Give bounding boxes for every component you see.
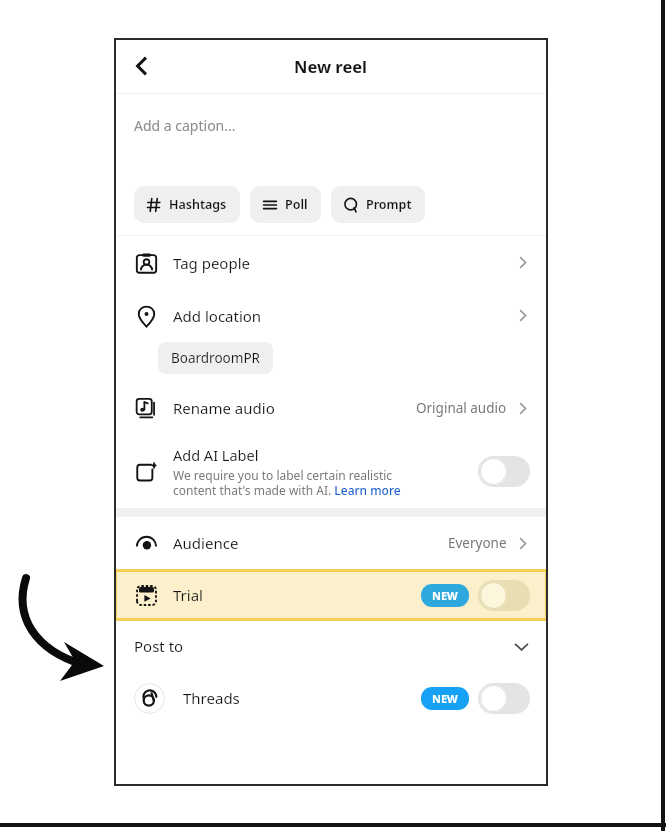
button[interactable]: Hashtags: [134, 186, 240, 223]
staticText: Post to: [134, 636, 184, 656]
button[interactable]: Threads: [114, 671, 548, 725]
button[interactable]: Prompt: [331, 186, 425, 223]
button[interactable]: Add AI Label: [114, 434, 548, 508]
staticText: Rename audio: [173, 398, 275, 418]
staticText: Poll: [285, 196, 308, 213]
staticText: Add location: [173, 306, 262, 326]
staticText: New reel: [294, 55, 368, 77]
staticText: Hashtags: [169, 196, 227, 213]
button[interactable]: Post to: [114, 621, 548, 671]
button[interactable]: Toggle: [478, 683, 530, 714]
staticText: BoardroomPR: [171, 349, 260, 367]
staticText: Trial: [173, 585, 203, 605]
button[interactable]: Tag people: [114, 236, 548, 289]
staticText: Everyone: [448, 534, 507, 552]
button[interactable]: Add location: [114, 289, 548, 342]
staticText: Add a caption...: [134, 116, 236, 135]
staticText: Tag people: [173, 253, 250, 273]
staticText: Original audio: [416, 399, 507, 417]
button[interactable]: BoardroomPR: [158, 342, 273, 374]
staticText: Threads: [183, 688, 240, 708]
staticText: Prompt: [366, 196, 412, 213]
button[interactable]: Add a caption...: [114, 94, 548, 186]
button[interactable]: Toggle: [478, 456, 530, 487]
button[interactable]: Audience: [114, 517, 548, 569]
staticText: NEW: [432, 691, 458, 706]
staticText: NEW: [432, 588, 458, 603]
staticText: We require you to label certain realisti…: [173, 467, 401, 498]
button[interactable]: Toggle: [478, 580, 530, 611]
staticText: Add AI Label: [173, 445, 259, 465]
button[interactable]: Rename audio: [114, 382, 548, 434]
staticText: Audience: [173, 533, 239, 553]
button[interactable]: Back: [118, 42, 166, 90]
button[interactable]: Trial: [114, 569, 548, 621]
button[interactable]: Poll: [250, 186, 321, 223]
